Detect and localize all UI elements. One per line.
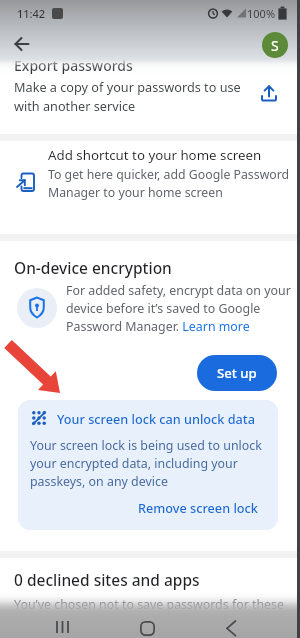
- button[interactable]: Your screen lock can unlock data: [18, 400, 278, 530]
- staticText: You’ve chosen not to save passwords for …: [14, 596, 285, 613]
- staticText: For added safety, encrypt data on your d…: [66, 282, 291, 335]
- staticText: Export passwords: [14, 56, 133, 75]
- staticText: Add shortcut to your home screen: [48, 146, 262, 164]
- button[interactable]: [14, 36, 30, 52]
- staticText: 0 declined sites and apps: [14, 569, 200, 590]
- staticText: On-device encryption: [14, 257, 172, 278]
- staticText: 11:42: [17, 6, 46, 21]
- button[interactable]: Remove screen lock: [138, 499, 258, 516]
- button[interactable]: Set up: [197, 355, 277, 391]
- button[interactable]: [225, 620, 237, 637]
- button[interactable]: [260, 84, 278, 102]
- staticText: Make a copy of your passwords to use wit…: [14, 78, 241, 114]
- button[interactable]: [140, 621, 155, 636]
- staticText: Remove screen lock: [138, 499, 258, 516]
- button[interactable]: S: [262, 32, 288, 58]
- staticText: S: [271, 36, 279, 55]
- button[interactable]: [56, 620, 70, 634]
- staticText: To get here quicker, add Google Password…: [48, 166, 290, 201]
- staticText: Set up: [217, 364, 257, 382]
- staticText: Your screen lock is being used to unlock…: [30, 437, 262, 489]
- staticText: Your screen lock can unlock data: [57, 410, 255, 427]
- staticText: 100%: [247, 6, 276, 21]
